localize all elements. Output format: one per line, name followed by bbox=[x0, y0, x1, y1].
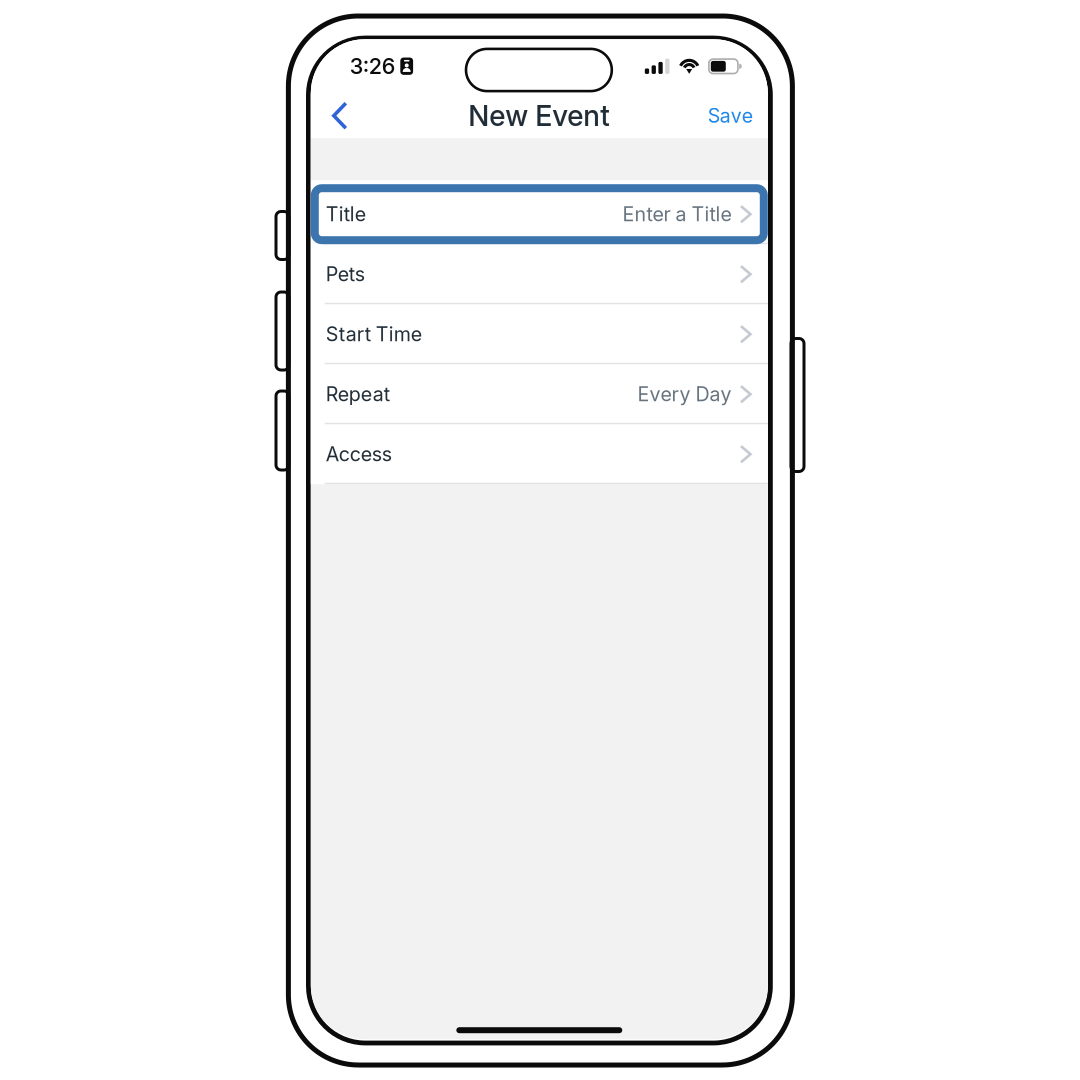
button[interactable]: Save bbox=[690, 93, 768, 138]
button[interactable]: Title bbox=[311, 184, 768, 244]
staticText: Every Day bbox=[638, 382, 732, 406]
staticText: Enter a Title bbox=[623, 202, 732, 226]
staticText: Pets bbox=[326, 262, 365, 286]
button[interactable]: Repeat bbox=[311, 364, 768, 424]
button[interactable]: Back bbox=[311, 93, 366, 138]
button[interactable]: Pets bbox=[311, 244, 768, 304]
staticText: New Event bbox=[468, 98, 610, 133]
staticText: Start Time bbox=[326, 322, 422, 346]
staticText: Access bbox=[326, 442, 392, 466]
staticText: Repeat bbox=[326, 382, 390, 406]
staticText: 3:26 bbox=[350, 53, 396, 79]
staticText: Title bbox=[326, 202, 366, 226]
staticText: Save bbox=[708, 104, 753, 127]
button[interactable]: Access bbox=[311, 424, 768, 484]
button[interactable]: Start Time bbox=[311, 304, 768, 364]
